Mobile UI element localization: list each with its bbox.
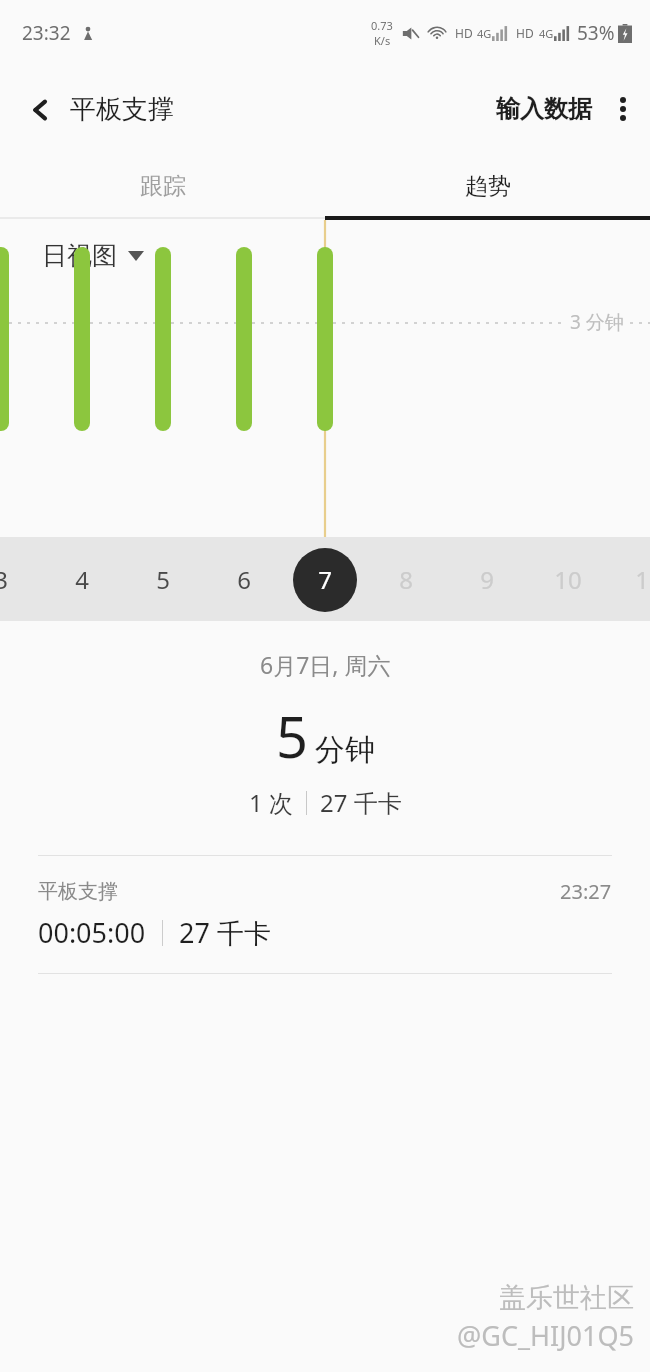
staticText: 10 — [554, 563, 582, 596]
staticText: @GC_HIJ01Q5 — [457, 1317, 634, 1354]
staticText: HD — [455, 25, 473, 41]
button[interactable]: Back — [0, 83, 186, 136]
staticText: 00:05:00 — [38, 914, 146, 951]
staticText: K/s — [374, 33, 391, 48]
button[interactable]: 3 — [0, 537, 29, 621]
staticText: 4 — [75, 563, 89, 596]
staticText: 23:27 — [560, 878, 612, 905]
staticText: 6 — [237, 563, 251, 596]
button[interactable]: 平板支撑 — [0, 856, 650, 973]
staticText: 0.73 — [371, 18, 393, 33]
button[interactable]: More options — [610, 88, 636, 130]
staticText: 平板支撑 — [70, 93, 174, 126]
staticText: 日视图 — [42, 240, 117, 271]
button[interactable]: 8 — [378, 537, 434, 621]
staticText: 11 — [635, 563, 650, 596]
staticText: 5 — [156, 563, 170, 596]
staticText: 跟踪 — [140, 172, 186, 201]
other: Back — [30, 99, 52, 121]
button[interactable]: 4 — [54, 537, 110, 621]
button[interactable]: 10 — [540, 537, 596, 621]
button[interactable]: 6 — [216, 537, 272, 621]
staticText: 4G — [539, 26, 554, 41]
staticText: 6月7日, 周六 — [260, 649, 391, 680]
staticText: 3 — [0, 563, 8, 596]
staticText: 4G — [477, 26, 492, 41]
staticText: 5 — [276, 698, 309, 774]
staticText: 输入数据 — [496, 94, 592, 124]
staticText: 趋势 — [465, 172, 511, 201]
staticText: 平板支撑 — [38, 879, 118, 904]
staticText: 53% — [577, 20, 615, 46]
staticText: 23:32 — [22, 20, 71, 46]
staticText: 3 分钟 — [570, 309, 624, 335]
staticText: 盖乐世社区 — [499, 1281, 634, 1315]
staticText: 7 — [318, 563, 332, 596]
button[interactable]: 5 — [135, 537, 191, 621]
button[interactable]: 趋势 — [325, 152, 650, 220]
staticText: 8 — [399, 563, 413, 596]
button[interactable]: 日视图 — [34, 232, 152, 279]
staticText: HD — [516, 25, 534, 41]
staticText: 分钟 — [315, 731, 375, 769]
button[interactable]: 跟踪 — [0, 152, 325, 220]
staticText: 27 千卡 — [179, 914, 271, 951]
button[interactable]: 输入数据 — [488, 84, 600, 134]
staticText: 9 — [480, 563, 494, 596]
staticText: 27 千卡 — [320, 786, 402, 819]
button[interactable]: 9 — [459, 537, 515, 621]
button[interactable]: 7 — [297, 537, 353, 621]
staticText: 1 次 — [249, 786, 293, 819]
button[interactable]: 11 — [621, 537, 650, 621]
